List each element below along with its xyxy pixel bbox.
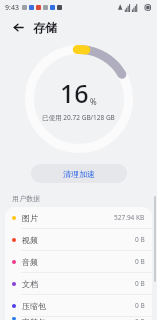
staticText: 用户数据 (12, 194, 40, 203)
staticText: 安装包 (22, 317, 46, 320)
staticText: 0 B (135, 279, 145, 288)
staticText: 图片 (22, 213, 38, 223)
staticText: 0 B (135, 301, 145, 310)
staticText: 清理加速 (63, 169, 95, 179)
staticText: % (90, 96, 97, 107)
button[interactable]: 清理加速 (31, 164, 127, 183)
staticText: 16 (60, 76, 89, 110)
staticText: 0 B (135, 235, 145, 244)
button[interactable]: 文档 (5, 273, 152, 294)
staticText: 9:43 (5, 3, 19, 13)
staticText: 527.94 KB (114, 213, 145, 222)
staticText: 音频 (22, 257, 38, 267)
staticText: 0 B (135, 317, 145, 320)
staticText: 0 B (135, 257, 145, 266)
button[interactable]: 压缩包 (5, 295, 152, 316)
button[interactable]: Back (8, 17, 28, 37)
button[interactable]: 视频 (5, 229, 152, 250)
staticText: 压缩包 (22, 301, 46, 311)
button[interactable]: 音频 (5, 251, 152, 272)
staticText: 文档 (22, 279, 38, 289)
staticText: 存储 (33, 20, 57, 35)
button[interactable]: 图片 (5, 207, 152, 228)
staticText: 视频 (22, 235, 38, 245)
button[interactable]: 安装包 (5, 317, 152, 320)
staticText: 已使用 20.72 GB/128 GB (42, 113, 115, 122)
